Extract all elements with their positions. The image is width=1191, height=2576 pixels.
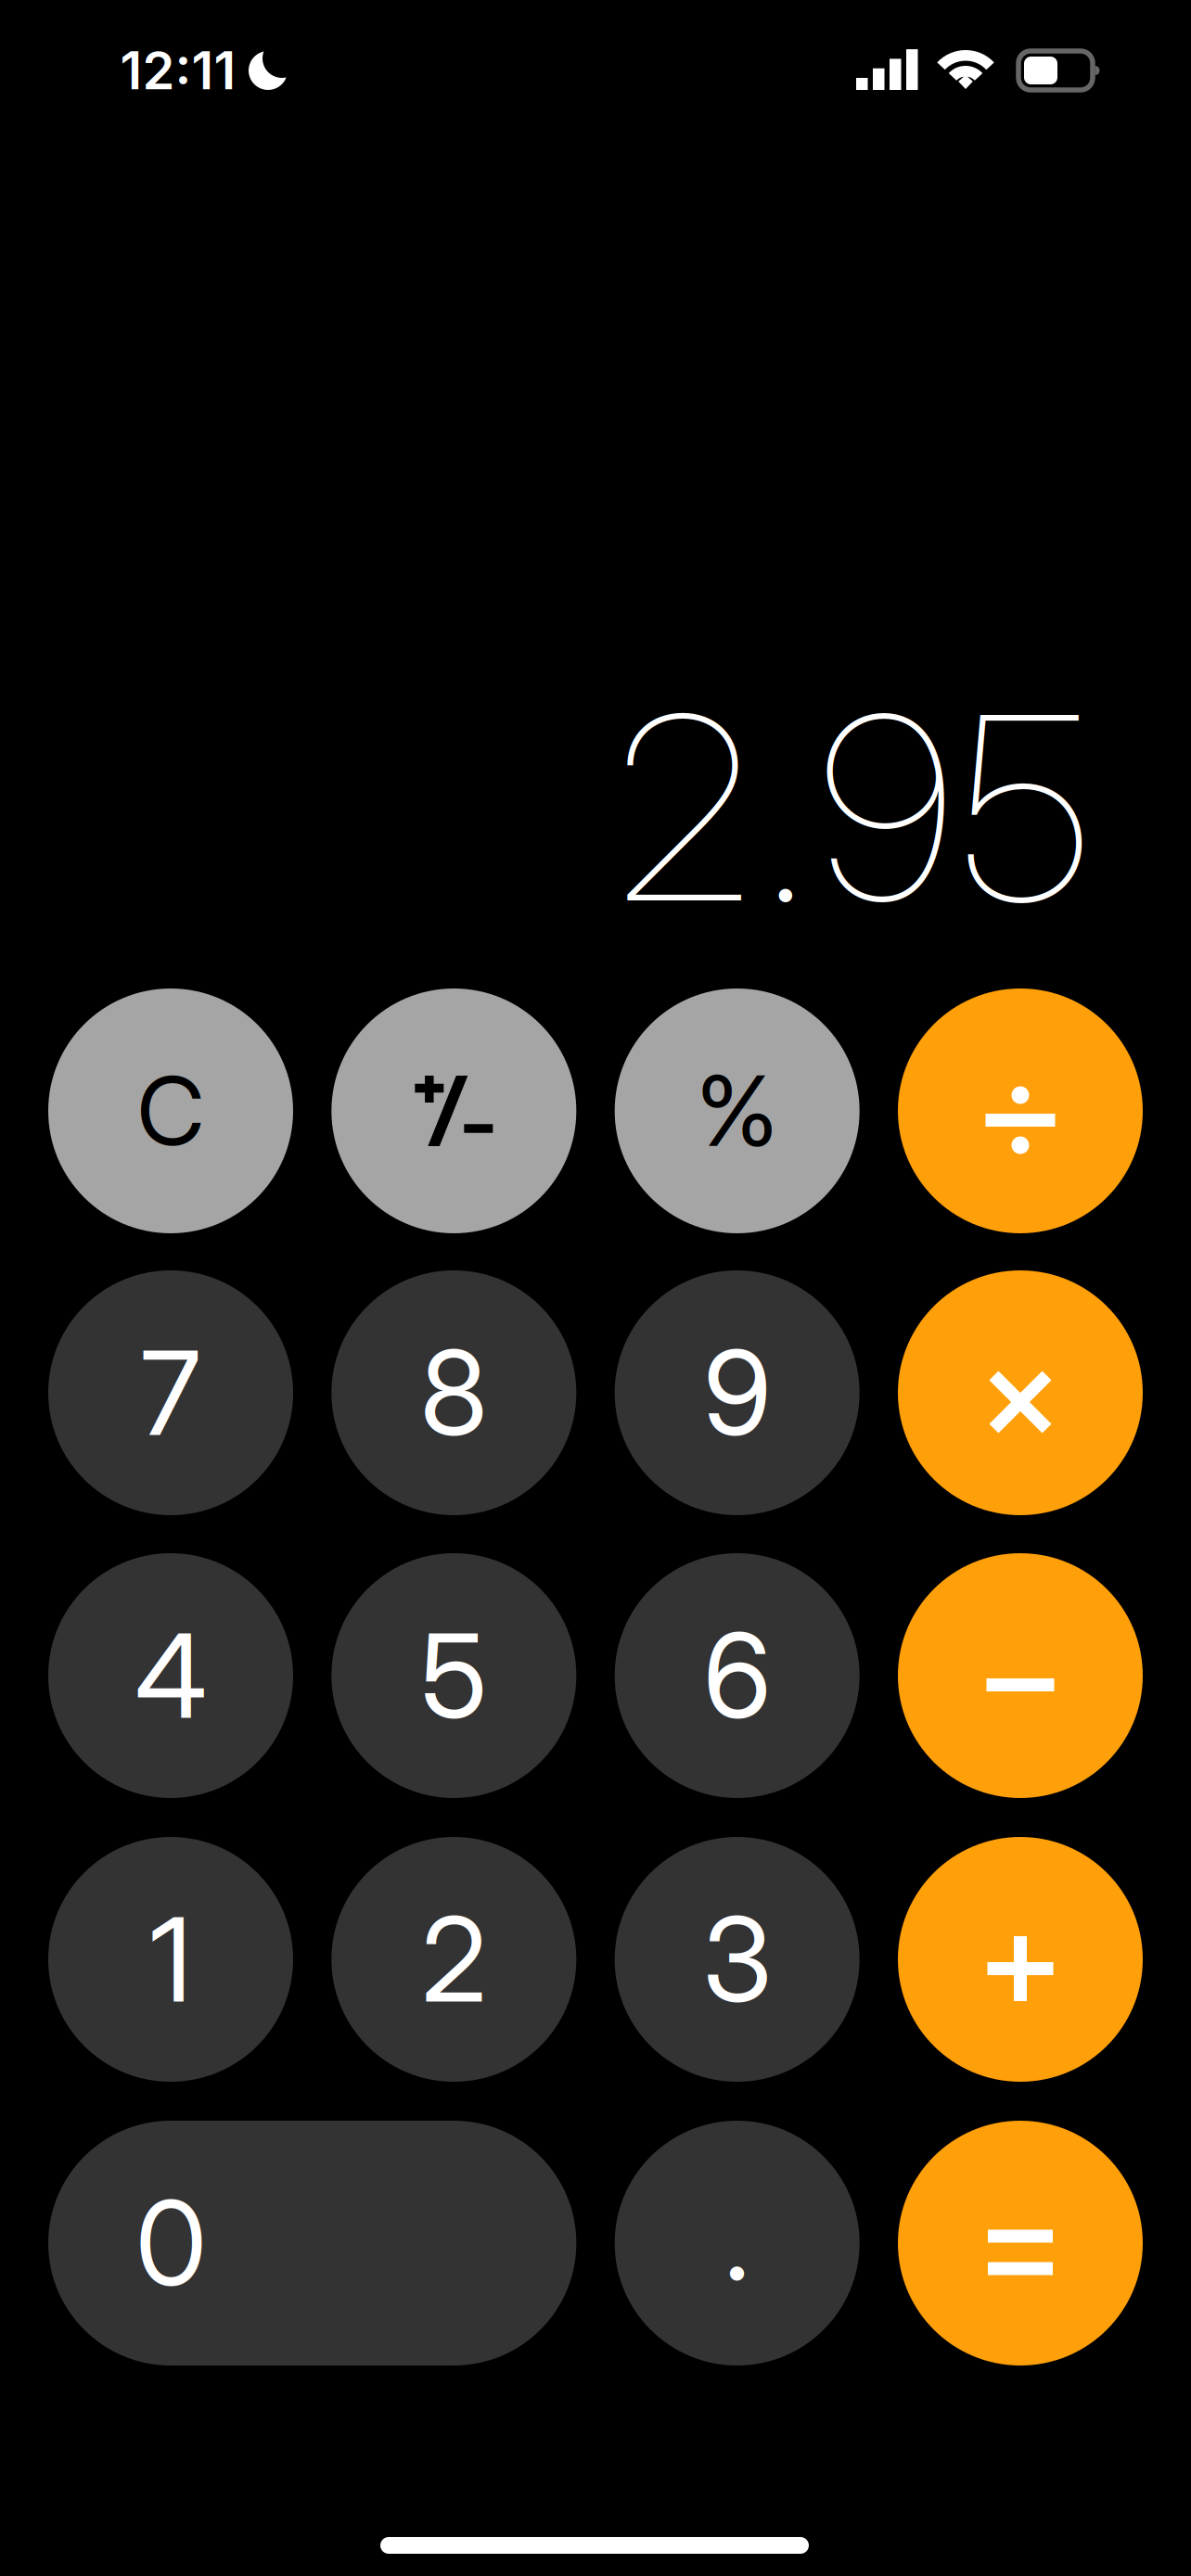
button[interactable]: Add [898, 1837, 1143, 2082]
staticText: 1 [150, 1889, 192, 2030]
staticText: 9 [703, 1322, 771, 1463]
staticText: 0 [135, 2173, 207, 2313]
staticText: . [724, 2167, 750, 2308]
button[interactable]: Subtract [898, 1553, 1143, 1798]
button[interactable]: 1 [48, 1837, 293, 2082]
staticText: 6 [703, 1605, 771, 1746]
staticText: 8 [420, 1322, 488, 1463]
button[interactable]: Equals [898, 2121, 1143, 2366]
button[interactable]: C [48, 988, 293, 1233]
button[interactable]: 3 [615, 1837, 860, 2082]
button[interactable]: 6 [615, 1553, 860, 1798]
staticText: 3 [702, 1889, 772, 2030]
staticText: 2.95 [616, 654, 1090, 962]
button[interactable]: Multiply [898, 1270, 1143, 1515]
button[interactable]: 7 [48, 1270, 293, 1515]
staticText: 4 [135, 1605, 206, 1746]
button[interactable]: Plus minus [331, 988, 576, 1233]
staticText: 7 [141, 1322, 201, 1463]
button[interactable]: . [615, 2121, 860, 2366]
staticText: 2 [421, 1889, 486, 2030]
button[interactable]: 8 [331, 1270, 576, 1515]
staticText: 12:11 [120, 39, 236, 102]
button[interactable]: Divide [898, 988, 1143, 1233]
button[interactable]: 5 [331, 1553, 576, 1798]
staticText: 5 [420, 1605, 487, 1746]
staticText: % [696, 1053, 778, 1169]
staticText: C [137, 1054, 205, 1168]
button[interactable]: 2 [331, 1837, 576, 2082]
button[interactable]: 4 [48, 1553, 293, 1798]
button[interactable]: 0 [48, 2121, 576, 2366]
button[interactable]: 9 [615, 1270, 860, 1515]
button[interactable]: % [615, 988, 860, 1233]
